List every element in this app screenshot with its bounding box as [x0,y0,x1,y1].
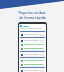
staticText: Paga tus recibos [18,10,46,15]
other: Recibo [21,54,23,56]
other: Recibo [21,70,23,72]
other: Recibo [21,48,23,50]
button[interactable]: Recibo [20,43,45,46]
button[interactable]: Recibo [20,53,45,56]
staticText: de forma rápida [19,15,46,20]
other: Recibo [21,60,23,62]
other: Recibo [21,64,23,66]
button[interactable]: Recibo [20,33,45,36]
button[interactable]: Recibo [20,63,45,66]
other: Recibo [21,44,23,46]
button[interactable]: Recibo [20,39,45,42]
other: Recibo [21,34,23,36]
other: Recibo [21,40,23,42]
button[interactable]: Recibo [20,69,45,72]
button[interactable]: Recibo [20,47,45,50]
button[interactable]: Recibo [20,59,45,62]
